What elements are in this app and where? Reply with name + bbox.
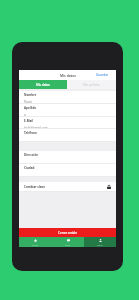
staticText: Cambiar clave [24, 185, 46, 189]
staticText: Cerrar sesión [58, 231, 78, 235]
button[interactable]: Mis pedidos [67, 80, 116, 89]
button[interactable]: Ciudad [19, 164, 116, 177]
staticText: Inicio [32, 243, 39, 246]
button[interactable]: Chat [52, 237, 84, 247]
staticText: Nombre [24, 93, 37, 97]
button[interactable]: Guardar [89, 71, 116, 79]
staticText: Flavio [24, 100, 33, 104]
staticText: Mis datos [36, 83, 50, 87]
button[interactable]: Dirección [19, 151, 116, 164]
button[interactable]: Home [19, 237, 52, 247]
button[interactable]: Profile [84, 237, 116, 247]
button[interactable]: Apellido [19, 104, 116, 117]
staticText: hola@gmail.com [24, 126, 48, 130]
staticText: a [24, 113, 26, 117]
staticText: Guardar [96, 73, 109, 77]
button[interactable]: E-Mail [19, 117, 116, 129]
button[interactable]: Cambiar clave [19, 182, 116, 192]
button[interactable]: Teléfono [19, 129, 116, 142]
button[interactable]: Mis datos [19, 80, 67, 89]
staticText: Dirección [24, 153, 38, 157]
staticText: Ciudad [24, 166, 35, 170]
staticText: E-Mail [24, 119, 34, 123]
staticText: Apellido [24, 106, 37, 110]
staticText: Mis datos [60, 73, 76, 78]
button[interactable]: Nombre [19, 91, 116, 104]
staticText: Chat [65, 243, 71, 246]
staticText: Perfil [97, 243, 103, 246]
button[interactable]: Cerrar sesión [19, 228, 116, 237]
staticText: Mis pedidos [83, 83, 100, 87]
staticText: Teléfono [24, 131, 37, 135]
